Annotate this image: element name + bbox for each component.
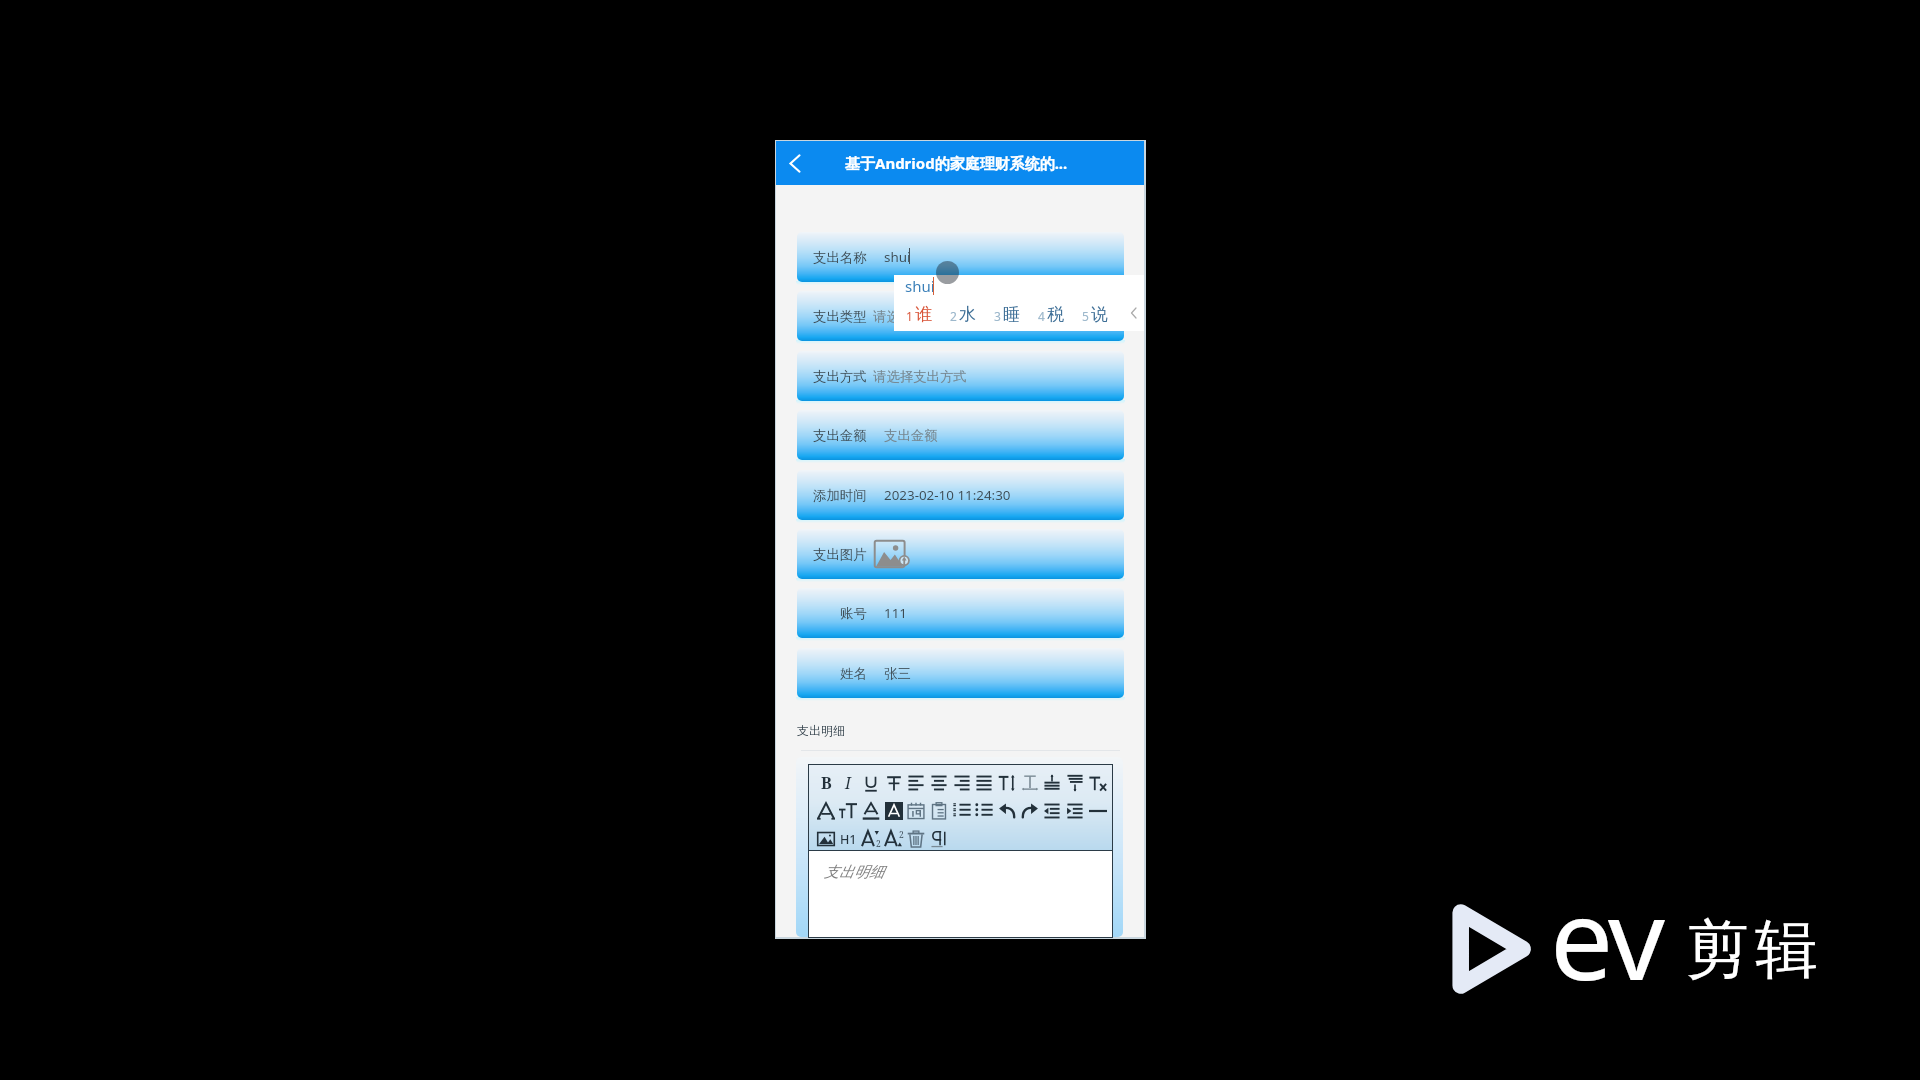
button[interactable]: Superscript [883, 828, 905, 850]
button[interactable]: Outdent [1041, 800, 1063, 822]
staticText: 张三 [884, 665, 911, 682]
staticText: 2 [950, 308, 957, 324]
button[interactable]: Strikethrough [883, 772, 905, 794]
button[interactable]: 支出明细 [808, 851, 1113, 938]
staticText: 2 [876, 838, 881, 850]
button[interactable]: Text size [837, 800, 859, 822]
button[interactable]: 4 [1038, 304, 1064, 325]
button[interactable]: 2 [950, 304, 976, 325]
staticText: 请选择支出类型 [873, 308, 967, 325]
button[interactable]: 3 [994, 304, 1020, 325]
staticText: 支出金额 [884, 427, 938, 444]
button[interactable]: Underline [860, 772, 882, 794]
staticText: 支出金额 [813, 427, 867, 444]
button[interactable]: Paragraph [928, 828, 950, 850]
staticText: 剪辑 [1683, 910, 1821, 989]
button[interactable]: 支出名称 [797, 232, 1124, 282]
button[interactable]: Justify [973, 772, 995, 794]
staticText: 谁 [915, 304, 932, 325]
button[interactable]: Indent [1064, 800, 1086, 822]
button[interactable]: Subscript [860, 828, 882, 850]
staticText: 支出名称 [813, 249, 867, 266]
staticText: 支出明细 [797, 723, 845, 738]
staticText: shui [884, 248, 911, 266]
staticText: 4 [1038, 308, 1045, 324]
staticText: 3 [994, 308, 1001, 324]
button[interactable]: Back [777, 141, 813, 185]
button[interactable]: Clear format [1087, 772, 1109, 794]
button[interactable]: Bulleted list [973, 800, 995, 822]
button[interactable]: Delete [905, 828, 927, 850]
staticText: 基于Andriod的家庭理财系统的... [845, 153, 1068, 173]
staticText: 2023-02-10 11:24:30 [884, 486, 1011, 504]
button[interactable]: Font size [996, 772, 1018, 794]
button[interactable]: 1 [906, 304, 932, 325]
button[interactable]: 支出金额 [797, 410, 1124, 460]
staticText: 税 [1047, 304, 1064, 325]
button[interactable]: Insert date [905, 800, 927, 822]
button[interactable]: 姓名 [797, 648, 1124, 698]
button[interactable]: Horizontal rule [1087, 800, 1109, 822]
button[interactable]: Align left [905, 772, 927, 794]
button[interactable]: 添加时间 [797, 470, 1124, 520]
button[interactable]: Line height [1019, 772, 1041, 794]
button[interactable]: More candidates [1129, 308, 1139, 318]
staticText: 支出类型 [813, 308, 867, 325]
button[interactable]: Align center [928, 772, 950, 794]
button[interactable]: Undo [996, 800, 1018, 822]
staticText: 水 [959, 304, 976, 325]
staticText: 111 [884, 604, 907, 622]
button[interactable]: Align top [1041, 772, 1063, 794]
button[interactable]: Numbered list [951, 800, 973, 822]
button[interactable]: 5 [1082, 304, 1108, 325]
staticText: I [845, 772, 851, 794]
staticText: B [821, 772, 832, 794]
staticText: 支出方式 [813, 368, 867, 385]
button[interactable]: Background colour [883, 800, 905, 822]
button[interactable]: 支出类型 [797, 291, 1124, 341]
staticText: ev [1550, 860, 1662, 1013]
button[interactable]: 支出图片 [797, 529, 1124, 579]
staticText: H1 [840, 831, 857, 848]
button[interactable]: 支出方式 [797, 351, 1124, 401]
button[interactable]: Underline colour [860, 800, 882, 822]
staticText: 2 [899, 829, 904, 841]
staticText: 添加时间 [813, 487, 867, 504]
staticText: 说 [1091, 304, 1108, 325]
staticText: 1 [906, 308, 913, 324]
button[interactable]: Text color [815, 800, 837, 822]
staticText: 账号 [840, 605, 867, 622]
button[interactable]: Italic [837, 772, 859, 794]
staticText: 支出明细 [824, 863, 884, 882]
button[interactable]: Heading 1 [837, 828, 859, 850]
button[interactable]: Align right [951, 772, 973, 794]
staticText: shui [905, 276, 935, 296]
button[interactable]: Paste [928, 800, 950, 822]
staticText: 姓名 [840, 665, 867, 682]
staticText: 支出图片 [813, 546, 867, 563]
button[interactable]: Insert image [815, 828, 837, 850]
button[interactable]: Bold [815, 772, 837, 794]
staticText: 5 [1082, 308, 1089, 324]
button[interactable]: 账号 [797, 588, 1124, 638]
staticText: 请选择支出方式 [873, 368, 967, 385]
button[interactable]: Align bottom [1064, 772, 1086, 794]
staticText: 睡 [1003, 304, 1020, 325]
button[interactable]: Redo [1019, 800, 1041, 822]
